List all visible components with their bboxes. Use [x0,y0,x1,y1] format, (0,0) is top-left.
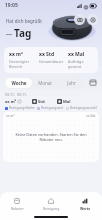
staticText: 19:05 [5,2,18,9]
button[interactable]: Kalender [88,78,98,88]
staticText: Reinigung [43,206,60,211]
staticText: Werte [80,206,91,211]
button[interactable]: Roboter [0,196,34,212]
staticText: 09.11. [17,92,27,97]
staticText: xx Std [39,51,55,58]
staticText: Jahr [67,80,76,86]
staticText: xx m² [6,114,15,118]
staticText: Reinigungsanzahl [70,106,97,110]
staticText: Tag [14,26,32,40]
staticText: Hat dich begrüßt [6,18,42,24]
staticText: Gesamtdauer [39,59,64,64]
staticText: xx Std. [86,114,96,118]
staticText: Gereinigter Bereich [9,59,30,69]
staticText: Keine Daten vorhanden. Starten Sie den R… [8,132,94,142]
staticText: xx Mal [68,51,85,58]
staticText: Reinigungszeit [41,106,64,110]
staticText: 03.11. [5,92,15,97]
staticText: xx m² [9,51,23,58]
staticText: Monat [38,80,52,86]
staticText: Std. [38,99,46,104]
staticText: Mal [63,99,71,104]
staticText: Reinigungsfläche [9,106,35,110]
button[interactable]: Woche [5,78,32,88]
staticText: ··· [6,30,12,40]
staticText: Aufträge gesamt [68,59,84,69]
button[interactable]: Reinigung [34,196,68,212]
button[interactable]: Einstellungen [87,14,98,25]
staticText: xx m² [5,99,17,104]
button[interactable]: Kamera [74,14,85,25]
button[interactable]: Monat [32,78,58,88]
staticText: Roboter [11,206,24,211]
button[interactable]: Jahr [58,78,84,88]
staticText: Woche [11,80,27,86]
button[interactable]: Werte [68,196,102,212]
